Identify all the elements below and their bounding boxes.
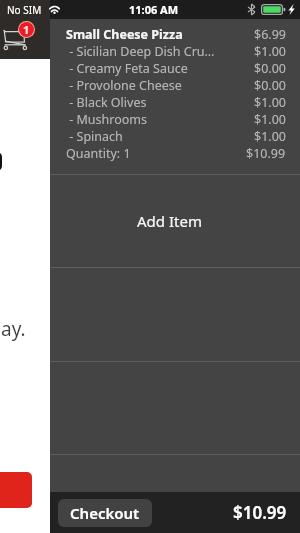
- staticText: $0.00: [254, 60, 286, 77]
- staticText: No SIM: [7, 3, 42, 17]
- staticText: $1.00: [254, 94, 286, 111]
- staticText: - Mushrooms: [66, 111, 254, 128]
- staticText: - Creamy Feta Sauce: [66, 60, 254, 77]
- staticText: $1.00: [254, 43, 286, 60]
- staticText: Add Item: [137, 211, 202, 231]
- button[interactable]: Add Item: [50, 175, 300, 267]
- staticText: - Sicilian Deep Dish Cru…: [66, 43, 254, 60]
- staticText: 1: [23, 22, 30, 37]
- staticText: 11:06 AM: [129, 2, 179, 17]
- staticText: Checkout: [70, 503, 140, 523]
- button[interactable]: Checkout: [58, 499, 152, 527]
- staticText: ay.: [1, 316, 26, 342]
- button[interactable]: Shopping cart: [3, 30, 28, 50]
- staticText: $10.99: [233, 501, 287, 524]
- staticText: - Provolone Cheese: [66, 77, 254, 94]
- staticText: $6.99: [254, 26, 286, 43]
- staticText: $1.00: [254, 128, 286, 145]
- button[interactable]: Place order: [0, 472, 32, 508]
- staticText: Small Cheese Pizza: [66, 26, 254, 43]
- staticText: - Black Olives: [66, 94, 254, 111]
- staticText: Quantity: 1: [66, 145, 246, 162]
- staticText: $1.00: [254, 111, 286, 128]
- staticText: $10.99: [246, 145, 286, 162]
- staticText: - Spinach: [66, 128, 254, 145]
- staticText: $0.00: [254, 77, 286, 94]
